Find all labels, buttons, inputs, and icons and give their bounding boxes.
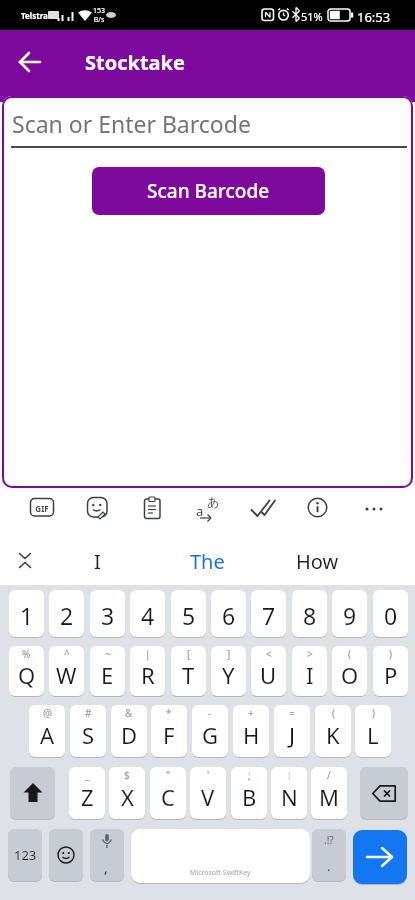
button[interactable]: 7 bbox=[251, 590, 286, 637]
staticText: 9 bbox=[343, 600, 357, 631]
button[interactable]: E bbox=[90, 646, 125, 696]
staticText: & bbox=[125, 706, 133, 720]
button[interactable]: G bbox=[192, 705, 228, 757]
button[interactable] bbox=[364, 506, 384, 512]
button[interactable]: U bbox=[251, 646, 286, 696]
staticText: P bbox=[384, 660, 398, 690]
button[interactable]: 2 bbox=[49, 590, 84, 637]
button[interactable]: B bbox=[231, 767, 267, 819]
staticText: ( bbox=[332, 706, 335, 720]
button[interactable] bbox=[360, 767, 408, 819]
button[interactable]: Y bbox=[211, 646, 246, 696]
staticText: N bbox=[281, 782, 298, 812]
button[interactable] bbox=[18, 50, 42, 74]
button[interactable]: 5 bbox=[171, 590, 206, 637]
button[interactable] bbox=[307, 497, 328, 518]
button[interactable]: W bbox=[49, 646, 84, 696]
button[interactable] bbox=[17, 552, 33, 569]
button[interactable]: P bbox=[373, 646, 408, 696]
button[interactable]: 6 bbox=[211, 590, 246, 637]
staticText: Microsoft SwiftKey bbox=[190, 868, 251, 878]
button[interactable]: Q bbox=[9, 646, 44, 696]
button[interactable]: .!? bbox=[312, 829, 346, 881]
button[interactable]: How bbox=[270, 541, 365, 581]
button[interactable] bbox=[250, 499, 276, 518]
staticText: Scan Barcode bbox=[147, 178, 270, 204]
staticText: E bbox=[101, 660, 114, 690]
staticText: U bbox=[260, 660, 277, 690]
button[interactable]: 123 bbox=[8, 829, 42, 881]
button[interactable]: The bbox=[155, 541, 260, 581]
staticText: ) bbox=[372, 706, 375, 720]
button[interactable]: L bbox=[355, 705, 391, 757]
staticText: 123 bbox=[14, 846, 37, 864]
staticText: GIF bbox=[30, 503, 54, 514]
button[interactable]: J bbox=[274, 705, 310, 757]
button[interactable] bbox=[10, 767, 55, 819]
button[interactable] bbox=[144, 497, 161, 519]
button[interactable]: GIF bbox=[30, 498, 54, 517]
staticText: + bbox=[248, 706, 254, 720]
button[interactable]: F bbox=[151, 705, 187, 757]
staticText: # bbox=[85, 706, 92, 720]
staticText: 4 bbox=[141, 600, 155, 631]
staticText: a bbox=[196, 502, 204, 520]
staticText: @ bbox=[43, 706, 52, 720]
button[interactable]: Z bbox=[69, 767, 105, 819]
staticText: あ bbox=[207, 494, 220, 509]
button[interactable]: 8 bbox=[292, 590, 327, 637]
button[interactable]: M bbox=[311, 767, 347, 819]
button[interactable] bbox=[353, 830, 407, 884]
staticText: / bbox=[327, 768, 331, 782]
button[interactable] bbox=[87, 497, 108, 519]
staticText: ^ bbox=[64, 647, 70, 661]
button[interactable]: Microsoft SwiftKey bbox=[131, 829, 310, 883]
staticText: Y bbox=[222, 660, 235, 690]
button[interactable]: A bbox=[29, 705, 65, 757]
button[interactable]: I bbox=[292, 646, 327, 696]
button[interactable]: I bbox=[50, 541, 145, 581]
button[interactable]: H bbox=[233, 705, 269, 757]
button[interactable]: 1 bbox=[9, 590, 44, 637]
button[interactable]: K bbox=[315, 705, 351, 757]
staticText: = bbox=[289, 706, 295, 720]
button[interactable]: T bbox=[171, 646, 206, 696]
button[interactable]: D bbox=[111, 705, 147, 757]
button[interactable]: N bbox=[271, 767, 307, 819]
button[interactable]: 3 bbox=[90, 590, 125, 637]
staticText: D bbox=[121, 720, 138, 750]
staticText: How bbox=[296, 548, 339, 575]
button[interactable]: 4 bbox=[130, 590, 165, 637]
button[interactable]: S bbox=[70, 705, 106, 757]
button[interactable]: 9 bbox=[332, 590, 367, 637]
staticText: 1 bbox=[20, 600, 34, 631]
staticText: 2 bbox=[60, 600, 74, 631]
staticText: X bbox=[121, 782, 134, 812]
button[interactable]: O bbox=[332, 646, 367, 696]
staticText: 7 bbox=[262, 600, 276, 631]
button[interactable]: 0 bbox=[373, 590, 408, 637]
staticText: , bbox=[104, 858, 108, 877]
staticText: G bbox=[202, 720, 219, 750]
staticText: T bbox=[182, 660, 195, 690]
staticText: - bbox=[208, 706, 212, 720]
staticText: Scan or Enter Barcode bbox=[12, 108, 251, 139]
button[interactable]: Scan Barcode bbox=[92, 167, 325, 215]
staticText: B/s bbox=[92, 15, 106, 25]
button[interactable]: R bbox=[130, 646, 165, 696]
staticText: F bbox=[163, 720, 175, 750]
button[interactable]: , bbox=[90, 829, 124, 881]
staticText: ( bbox=[348, 647, 351, 661]
staticText: ] bbox=[227, 647, 231, 661]
staticText: > bbox=[307, 647, 313, 661]
staticText: .!? bbox=[324, 833, 334, 847]
button[interactable]: C bbox=[150, 767, 186, 819]
staticText: % bbox=[22, 647, 31, 661]
button[interactable] bbox=[49, 829, 83, 881]
button[interactable]: V bbox=[190, 767, 226, 819]
button[interactable]: a bbox=[196, 496, 222, 521]
staticText: C bbox=[161, 782, 175, 812]
staticText: B bbox=[242, 782, 257, 812]
button[interactable]: X bbox=[109, 767, 145, 819]
staticText: I bbox=[94, 548, 101, 575]
